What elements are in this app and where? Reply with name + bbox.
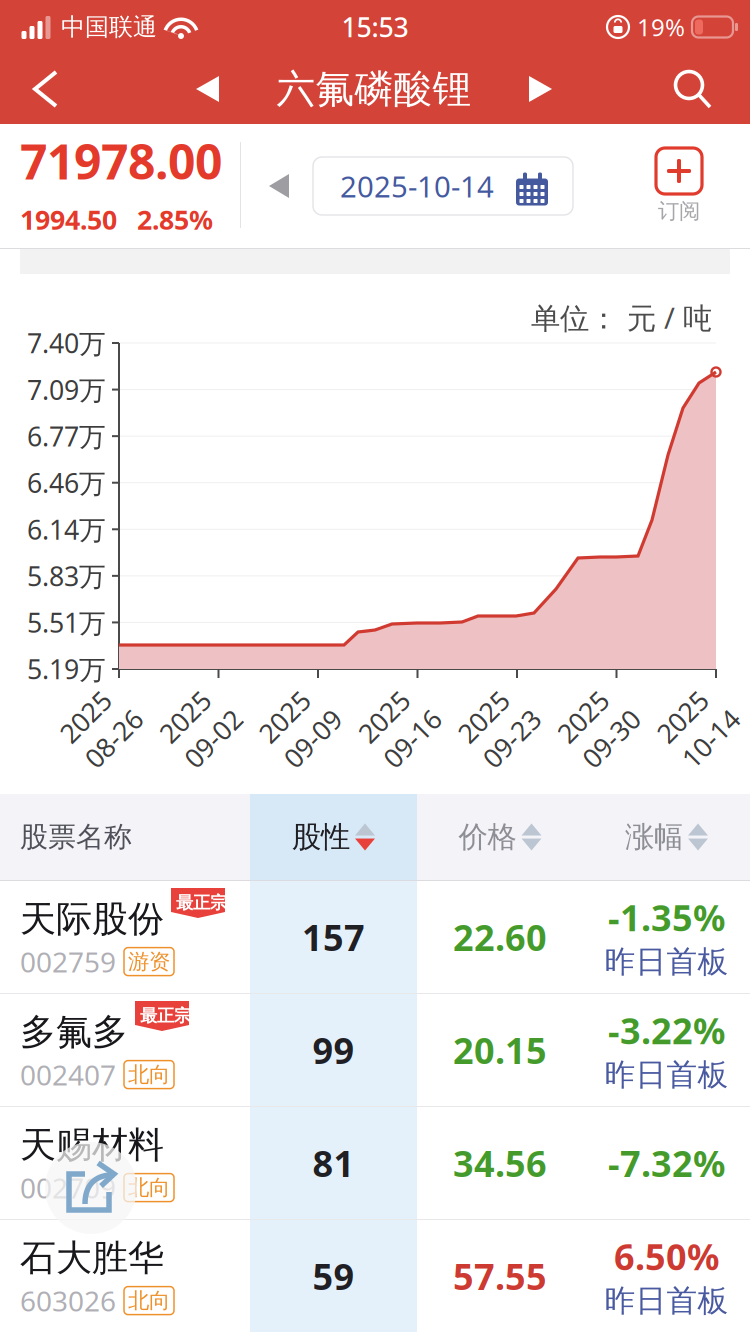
staticText: 57.55 xyxy=(453,1252,547,1300)
staticText: 1994.50 xyxy=(20,202,117,237)
staticText: 最正宗 xyxy=(140,1005,191,1026)
staticText: 15:53 xyxy=(341,9,408,45)
staticText: 股性 xyxy=(292,819,350,855)
staticText: 002759 xyxy=(20,943,116,980)
staticText: 99 xyxy=(312,1026,354,1074)
staticText: 2025 xyxy=(265,691,325,726)
button[interactable]: 涨幅 xyxy=(583,794,750,880)
staticText: 6.14万 xyxy=(27,512,106,547)
staticText: 59 xyxy=(312,1252,354,1300)
staticText: 09-16 xyxy=(365,726,434,761)
staticText: 157 xyxy=(302,913,365,961)
button[interactable]: 返回 xyxy=(13,54,79,124)
staticText: 19% xyxy=(637,11,685,43)
staticText: 2025 xyxy=(365,691,425,726)
staticText: 多氟多 xyxy=(20,1010,128,1054)
staticText: 昨日首板 xyxy=(604,1282,728,1320)
staticText: 游资 xyxy=(128,948,170,975)
staticText: 单位： 元 / 吨 xyxy=(531,298,712,337)
staticText: 6.46万 xyxy=(27,465,106,500)
staticText: 09-09 xyxy=(265,726,334,761)
staticText: 石大胜华 xyxy=(20,1236,164,1280)
staticText: 最正宗 xyxy=(176,892,227,913)
button[interactable]: 上一个 xyxy=(179,54,223,124)
staticText: 7.40万 xyxy=(27,325,106,361)
staticText: 北向 xyxy=(128,1287,170,1314)
staticText: 5.83万 xyxy=(27,558,106,594)
staticText: 2025 xyxy=(166,691,226,726)
staticText: 002709 xyxy=(20,1169,116,1206)
button[interactable]: 天际股份 xyxy=(0,881,750,993)
staticText: 涨幅 xyxy=(625,819,683,855)
staticText: 09-02 xyxy=(166,726,235,761)
staticText: 昨日首板 xyxy=(604,943,728,981)
staticText: 09-30 xyxy=(564,726,633,761)
staticText: -7.32% xyxy=(608,1139,725,1187)
staticText: 08-26 xyxy=(66,726,135,761)
staticText: 天赐材料 xyxy=(20,1123,164,1167)
staticText: -1.35% xyxy=(608,893,725,941)
staticText: 昨日首板 xyxy=(604,1056,728,1094)
button[interactable]: 下一个 xyxy=(512,54,556,124)
staticText: 北向 xyxy=(128,1061,170,1088)
staticText: 2025 xyxy=(66,691,126,726)
button[interactable]: 分享 xyxy=(45,1142,137,1234)
staticText: 天际股份 xyxy=(20,897,164,941)
button[interactable]: 石大胜华 xyxy=(0,1220,750,1332)
staticText: 2025 xyxy=(564,691,624,726)
button[interactable]: 订阅 xyxy=(631,148,727,224)
staticText: 北向 xyxy=(128,1174,170,1201)
staticText: 2025 xyxy=(663,691,723,726)
staticText: 10-14 xyxy=(663,726,732,761)
staticText: 中国联通 xyxy=(61,12,157,42)
staticText: 002407 xyxy=(20,1056,116,1093)
staticText: 603026 xyxy=(20,1282,116,1319)
button[interactable]: 多氟多 xyxy=(0,994,750,1106)
staticText: 2.85% xyxy=(137,202,213,237)
button[interactable]: 2025-10-14 xyxy=(313,157,573,215)
button[interactable]: 天赐材料 xyxy=(0,1107,750,1219)
staticText: 2025 xyxy=(464,691,524,726)
button[interactable]: 股性 xyxy=(250,794,417,880)
staticText: 5.51万 xyxy=(27,605,106,640)
staticText: 71978.00 xyxy=(20,129,222,193)
staticText: 六氟磷酸锂 xyxy=(276,65,471,113)
staticText: 34.56 xyxy=(453,1139,547,1187)
staticText: 订阅 xyxy=(658,198,700,224)
staticText: 价格 xyxy=(458,819,516,855)
staticText: 6.50% xyxy=(614,1232,719,1280)
staticText: 81 xyxy=(312,1139,354,1187)
staticText: 股票名称 xyxy=(20,820,132,854)
staticText: 22.60 xyxy=(453,913,547,961)
button[interactable]: 价格 xyxy=(417,794,583,880)
staticText: 09-23 xyxy=(464,726,533,761)
staticText: -3.22% xyxy=(608,1006,725,1054)
staticText: 2025-10-14 xyxy=(340,166,494,205)
staticText: 7.09万 xyxy=(27,372,106,407)
button[interactable]: 搜索 xyxy=(657,54,727,124)
staticText: 20.15 xyxy=(453,1026,547,1074)
staticText: 6.77万 xyxy=(27,418,106,454)
staticText: 5.19万 xyxy=(27,651,106,687)
button[interactable]: 前一天 xyxy=(258,160,302,212)
